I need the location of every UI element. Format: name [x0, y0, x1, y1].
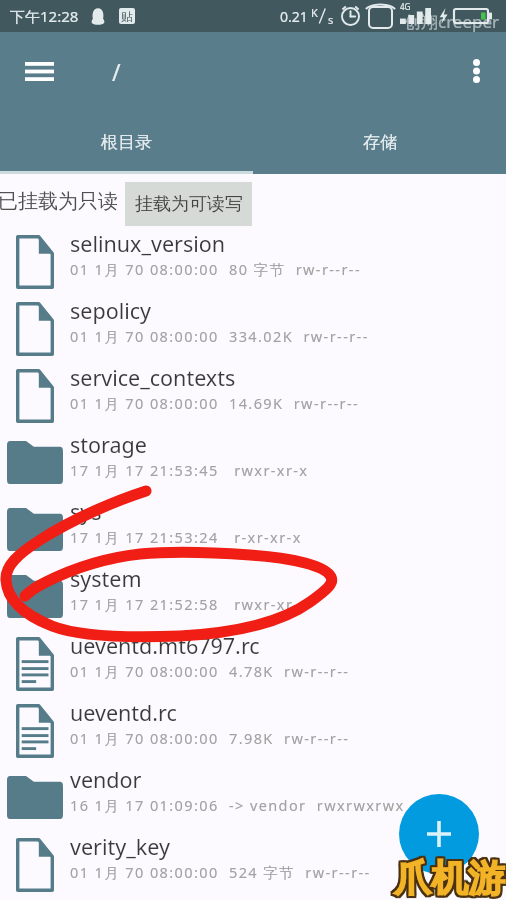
- staticText: 爪机游: [393, 857, 504, 900]
- staticText: 爪机游: [396, 857, 506, 900]
- staticText: 01 1月 70 08:00:00 524 字节 rw-r--r--: [70, 862, 371, 882]
- staticText: 爪机游: [392, 856, 503, 900]
- staticText: 爪机游: [394, 857, 505, 900]
- staticText: 贴: [121, 9, 133, 24]
- staticText: verity_key: [70, 832, 170, 861]
- staticText: 01 1月 70 08:00:00 80 字节 rw-r--r--: [70, 259, 361, 279]
- staticText: 爪机游: [395, 856, 506, 900]
- staticText: 创翔creeper: [404, 10, 500, 33]
- staticText: ueventd.mt6797.rc: [70, 631, 260, 660]
- staticText: 16 1月 17 01:09:06 -> vendor rwxrwxrwx: [70, 795, 405, 815]
- staticText: 下午12:28: [10, 6, 79, 26]
- staticText: 挂载为可读写: [135, 193, 243, 216]
- button[interactable]: More options: [453, 48, 499, 94]
- button[interactable]: system: [0, 563, 506, 630]
- staticText: 爪机游: [393, 855, 504, 900]
- staticText: 爪机游: [394, 853, 505, 900]
- staticText: 爪机游: [394, 855, 505, 900]
- button[interactable]: service_contexts: [0, 362, 506, 429]
- button[interactable]: vendor: [0, 764, 506, 831]
- staticText: service_contexts: [70, 363, 236, 392]
- staticText: ueventd.rc: [70, 698, 177, 727]
- button[interactable]: sepolicy: [0, 295, 506, 362]
- staticText: 4G: [400, 1, 411, 12]
- staticText: 爪机游: [396, 854, 506, 900]
- staticText: 爪机游: [395, 853, 506, 900]
- staticText: s: [328, 12, 334, 27]
- staticText: vendor: [70, 765, 142, 794]
- button[interactable]: 挂载为可读写: [125, 182, 252, 226]
- staticText: 爪机游: [395, 855, 506, 900]
- button[interactable]: sys: [0, 496, 506, 563]
- staticText: 爪机游: [396, 856, 506, 900]
- button[interactable]: 存储: [253, 110, 506, 174]
- staticText: 0.21: [280, 7, 308, 26]
- staticText: 爪机游: [394, 854, 505, 900]
- staticText: system: [70, 564, 142, 593]
- button[interactable]: selinux_version: [0, 228, 506, 295]
- staticText: 爪机游: [395, 854, 506, 900]
- staticText: 爪机游: [393, 853, 504, 900]
- staticText: 爪机游: [393, 856, 504, 900]
- button[interactable]: Add: [399, 794, 479, 874]
- staticText: 爪机游: [392, 854, 503, 900]
- button[interactable]: Open navigation drawer: [15, 47, 63, 95]
- staticText: 01 1月 70 08:00:00 14.69K rw-r--r--: [70, 393, 360, 413]
- staticText: 01 1月 70 08:00:00 334.02K rw-r--r--: [70, 326, 369, 346]
- staticText: 已挂载为只读: [0, 189, 118, 214]
- button[interactable]: ueventd.mt6797.rc: [0, 630, 506, 697]
- staticText: 爪机游: [395, 857, 506, 900]
- staticText: /: [112, 56, 121, 87]
- staticText: K: [311, 5, 318, 20]
- staticText: sepolicy: [70, 296, 152, 325]
- staticText: selinux_version: [70, 229, 226, 258]
- staticText: 根目录: [101, 132, 152, 153]
- staticText: 01 1月 70 08:00:00 4.78K rw-r--r--: [70, 661, 350, 681]
- staticText: storage: [70, 430, 147, 459]
- staticText: 17 1月 17 21:52:58 rwxr-xr-x: [70, 594, 309, 614]
- staticText: sys: [70, 497, 102, 526]
- button[interactable]: 根目录: [0, 110, 253, 174]
- staticText: 17 1月 17 21:53:45 rwxr-xr-x: [70, 460, 309, 480]
- button[interactable]: ueventd.rc: [0, 697, 506, 764]
- staticText: 存储: [363, 132, 397, 153]
- staticText: 爪机游: [396, 855, 506, 900]
- staticText: 爪机游: [393, 854, 504, 900]
- staticText: 01 1月 70 08:00:00 7.98K rw-r--r--: [70, 728, 350, 748]
- button[interactable]: verity_key: [0, 831, 506, 898]
- staticText: 爪机游: [394, 856, 505, 900]
- button[interactable]: storage: [0, 429, 506, 496]
- staticText: 17 1月 17 21:53:24 r-xr-xr-x: [70, 527, 302, 547]
- staticText: 爪机游: [392, 857, 503, 900]
- staticText: 爪机游: [392, 853, 503, 900]
- staticText: 爪机游: [396, 853, 506, 900]
- staticText: 爪机游: [392, 855, 503, 900]
